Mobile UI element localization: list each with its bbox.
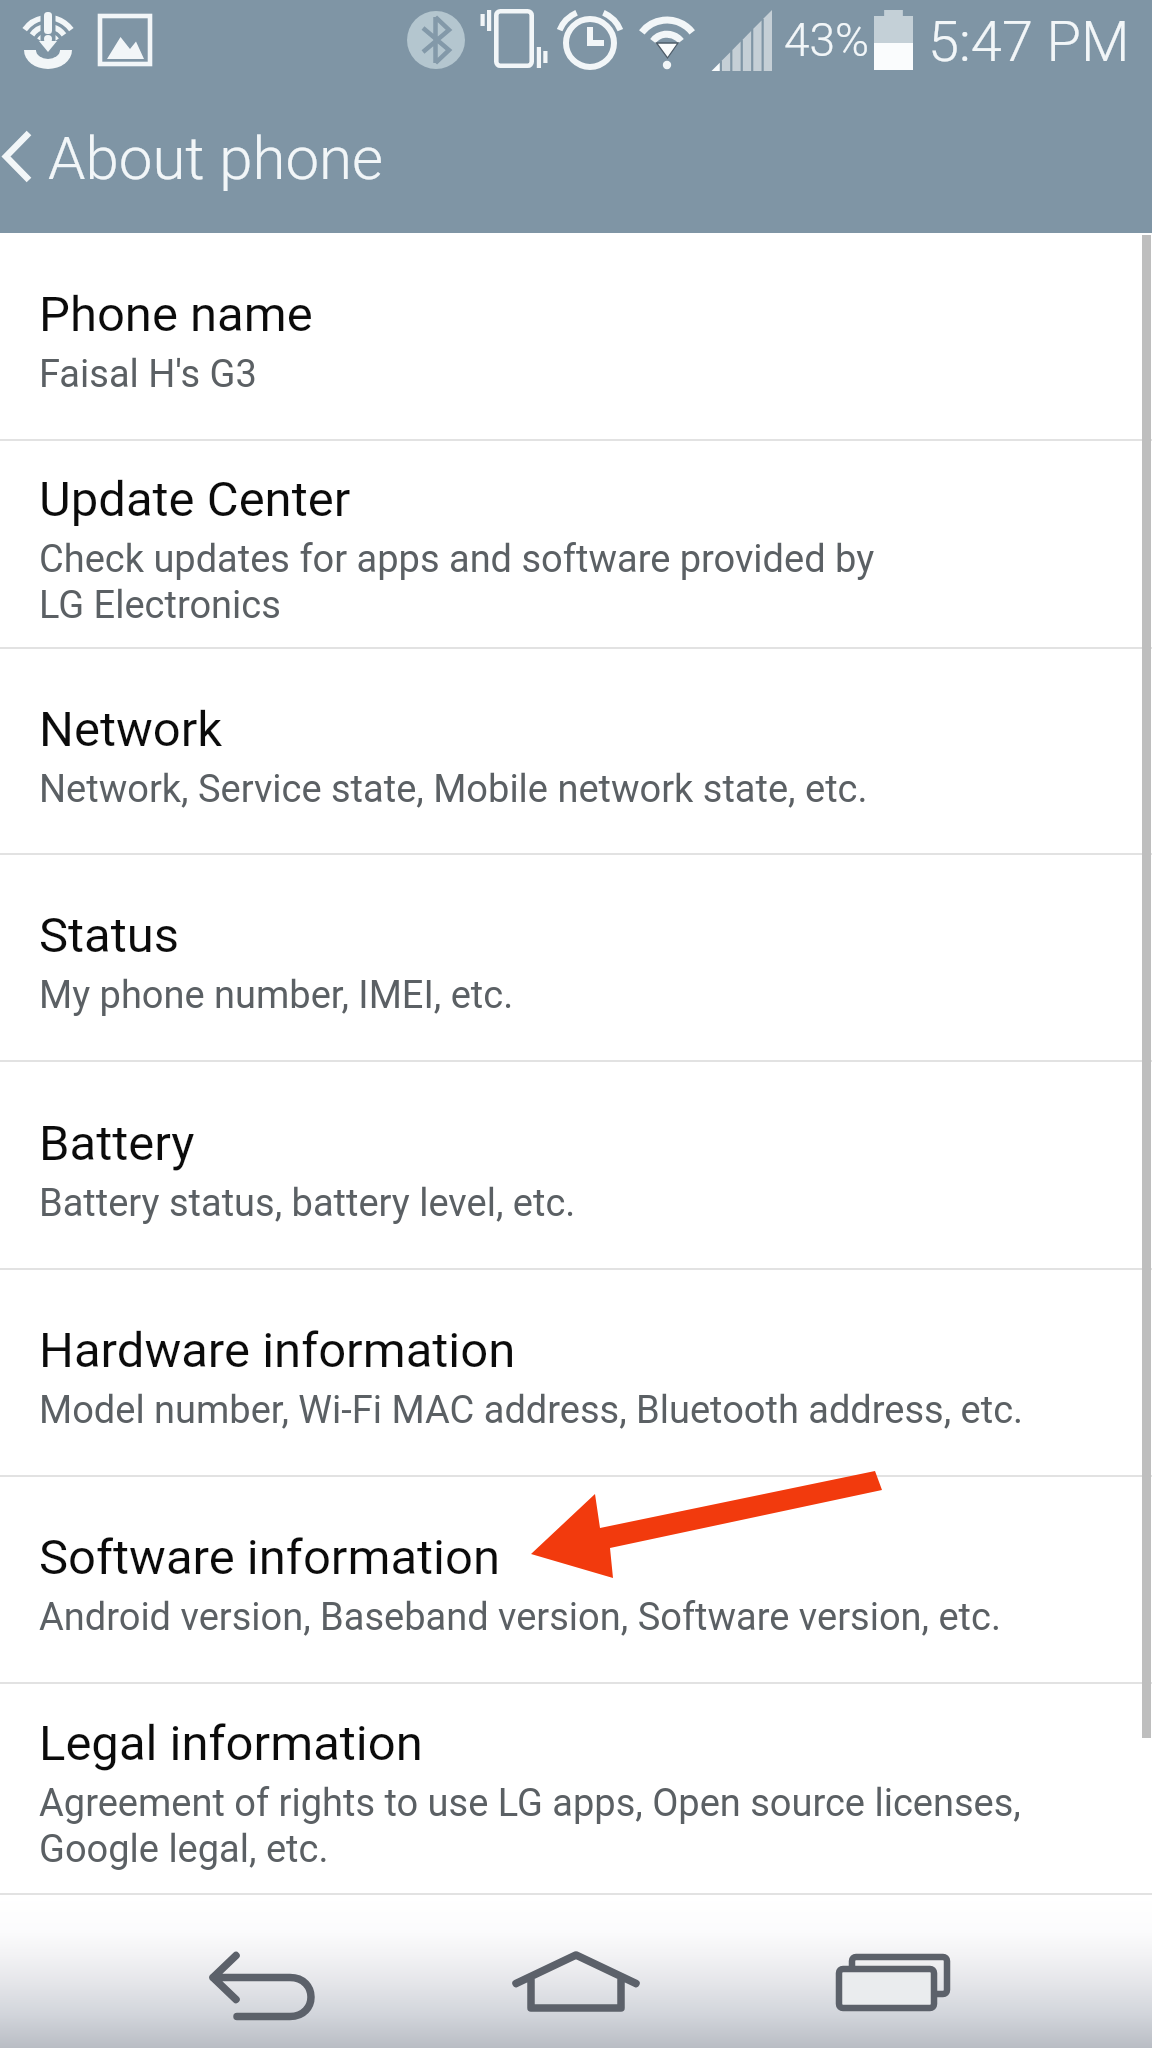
button[interactable]: Recent apps (768, 1895, 1152, 2048)
staticText: Model number, Wi-Fi MAC address, Bluetoo… (39, 1388, 1024, 1433)
staticText: About phone (48, 123, 384, 193)
button[interactable]: Legal information (0, 1684, 1152, 1895)
staticText: 43% (784, 13, 870, 67)
staticText: Network (39, 701, 223, 758)
button[interactable]: Back (0, 88, 48, 233)
button[interactable]: Hardware information (0, 1270, 1152, 1477)
button[interactable]: Status (0, 855, 1152, 1062)
staticText: Agreement of rights to use LG apps, Open… (39, 1781, 1021, 1872)
staticText: Status (39, 907, 180, 964)
button[interactable]: Network (0, 649, 1152, 855)
staticText: Update Center (39, 471, 351, 528)
staticText: My phone number, IMEI, etc. (39, 973, 514, 1018)
button[interactable]: Battery (0, 1062, 1152, 1270)
staticText: Hardware information (39, 1322, 516, 1379)
staticText: Battery status, battery level, etc. (39, 1181, 576, 1226)
button[interactable]: Phone name (0, 233, 1152, 441)
staticText: Legal information (39, 1715, 423, 1772)
staticText: Check updates for apps and software prov… (39, 537, 875, 628)
staticText: Battery (39, 1115, 195, 1172)
button[interactable]: Update Center (0, 441, 1152, 649)
staticText: Software information (39, 1529, 501, 1586)
staticText: Faisal H's G3 (39, 352, 257, 397)
staticText: 5:47 PM (928, 9, 1130, 75)
button[interactable]: Software information (0, 1477, 1152, 1684)
staticText: Phone name (39, 286, 313, 343)
staticText: Network, Service state, Mobile network s… (39, 767, 868, 812)
staticText: Android version, Baseband version, Softw… (39, 1595, 1001, 1640)
button[interactable]: Back (0, 1895, 384, 2048)
button[interactable]: Home (384, 1895, 768, 2048)
